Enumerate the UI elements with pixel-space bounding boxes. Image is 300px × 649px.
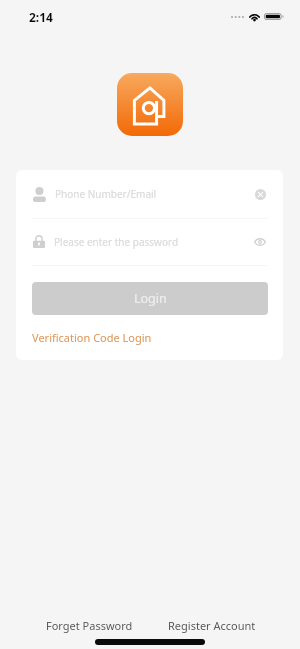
button[interactable]: Login [32, 282, 268, 315]
button[interactable]: Register Account [168, 618, 256, 633]
button[interactable]: Forget Password [46, 618, 133, 633]
staticText: 2:14 [29, 9, 53, 25]
button[interactable]: Verification Code Login [32, 330, 152, 345]
button[interactable]: Show password [249, 231, 271, 253]
staticText: Login [134, 290, 167, 307]
staticText: Register Account [168, 618, 256, 633]
button[interactable]: Please enter the password [33, 218, 271, 265]
staticText: Forget Password [46, 618, 133, 633]
staticText: Phone Number/Email [55, 187, 157, 201]
button[interactable]: Phone Number/Email [33, 170, 271, 218]
staticText: Please enter the password [54, 235, 179, 249]
button[interactable]: Clear text [249, 183, 271, 205]
staticText: Verification Code Login [32, 330, 152, 345]
